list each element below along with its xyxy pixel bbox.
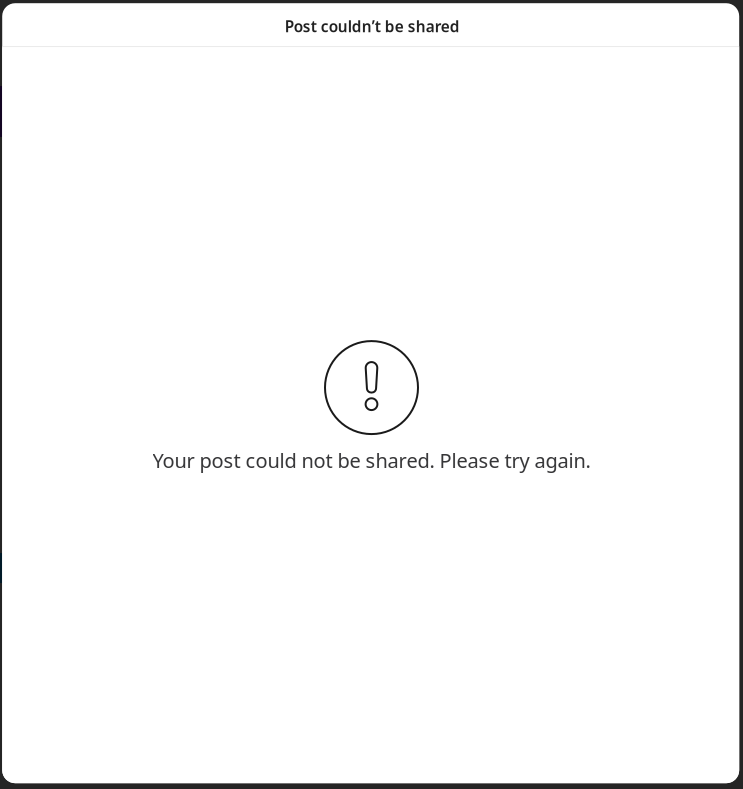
staticText: Post couldn’t be shared: [285, 16, 460, 37]
staticText: Your post could not be shared. Please tr…: [152, 447, 590, 474]
